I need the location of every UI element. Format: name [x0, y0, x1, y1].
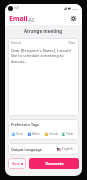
staticText: Formal [49, 132, 58, 136]
staticText: Arrange meeting [24, 28, 63, 34]
button[interactable]: Short [11, 130, 25, 137]
staticText: Preference Tags [11, 122, 39, 127]
staticText: Dear [Recipient's Name], I would like to… [11, 48, 76, 65]
staticText: English [62, 147, 73, 151]
button[interactable]: Generate [29, 158, 79, 169]
button[interactable]: Warm [27, 130, 42, 137]
staticText: 9:41 [14, 6, 20, 10]
staticText: AI [28, 16, 35, 24]
staticText: Clear [68, 41, 76, 45]
staticText: Output Language [11, 147, 42, 152]
staticText: Back [12, 161, 20, 166]
staticText: Email [9, 14, 28, 24]
staticText: Short [16, 132, 23, 136]
staticText: Generate [45, 161, 64, 166]
staticText: Polite [66, 132, 74, 136]
staticText: Warm [32, 132, 40, 136]
button[interactable]: Back [8, 158, 26, 169]
button[interactable]: Settings [69, 14, 78, 23]
button[interactable]: Formal [8, 38, 79, 116]
button[interactable]: Output Language [8, 143, 79, 155]
staticText: 100% [72, 7, 79, 10]
button[interactable]: Polite [61, 130, 76, 137]
staticText: Formal [11, 41, 21, 45]
button[interactable]: Formal [44, 130, 59, 137]
